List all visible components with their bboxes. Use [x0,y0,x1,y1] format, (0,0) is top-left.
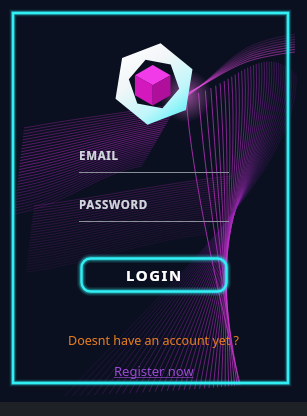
staticText: PASSWORD [79,197,148,213]
staticText: Doesnt have an account yet ? [68,332,239,349]
button[interactable]: Register now [108,360,200,382]
staticText: Register now [114,362,194,380]
staticText: EMAIL [79,148,119,164]
staticText: LOGIN [126,265,183,285]
button[interactable]: LOGIN [78,255,230,295]
button[interactable]: Doesnt have an account yet ? [0,332,307,349]
button[interactable]: EMAIL [79,148,229,173]
button[interactable]: PASSWORD [79,197,229,222]
